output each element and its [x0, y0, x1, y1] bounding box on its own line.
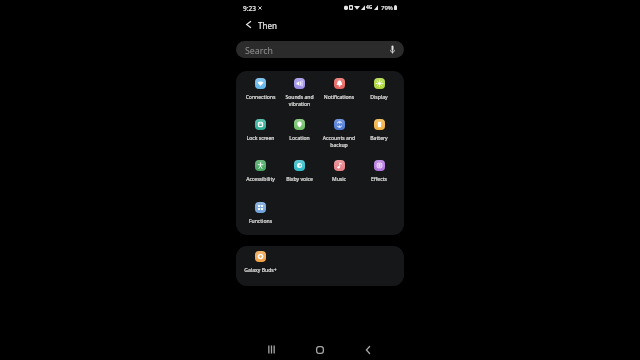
staticText: Galaxy Buds+ [241, 267, 280, 274]
button[interactable]: Music [319, 160, 359, 194]
button[interactable]: Battery [359, 119, 399, 153]
button[interactable]: Home [312, 336, 327, 360]
staticText: Effects [359, 176, 399, 183]
staticText: Search [245, 45, 273, 57]
button[interactable]: Lock screen [241, 119, 280, 153]
button[interactable]: Display [359, 78, 399, 112]
button[interactable]: Location [280, 119, 319, 153]
staticText: Connections [241, 94, 280, 101]
button[interactable]: Sounds and vibration [280, 78, 319, 112]
button[interactable]: Functions [241, 202, 280, 235]
staticText: Functions [241, 218, 280, 225]
staticText: Accessibility [241, 176, 280, 183]
staticText: Accounts and backup [319, 135, 359, 148]
button[interactable]: Notifications [319, 78, 359, 112]
staticText: Display [359, 94, 399, 101]
staticText: 9:23 [243, 4, 256, 11]
button[interactable]: Accessibility [241, 160, 280, 194]
button[interactable]: Navigate up [240, 16, 257, 33]
staticText: Lock screen [241, 135, 280, 142]
staticText: Battery [359, 135, 399, 142]
staticText: Then [258, 20, 277, 31]
button[interactable]: Connections [241, 78, 280, 112]
button[interactable]: Recent apps [264, 336, 279, 360]
staticText: Music [319, 176, 359, 183]
staticText: Bixby voice [280, 176, 319, 183]
button[interactable]: Search [236, 41, 404, 58]
button[interactable]: Bixby voice [280, 160, 319, 194]
button[interactable]: Galaxy Buds+ [241, 246, 280, 286]
button[interactable]: Accounts and backup [319, 119, 359, 153]
staticText: Notifications [319, 94, 359, 101]
button[interactable]: Back [360, 336, 375, 360]
staticText: Sounds and vibration [280, 94, 319, 107]
staticText: 4G [366, 4, 373, 11]
staticText: 79% [381, 4, 393, 12]
button[interactable]: Effects [359, 160, 399, 194]
staticText: Location [280, 135, 319, 142]
